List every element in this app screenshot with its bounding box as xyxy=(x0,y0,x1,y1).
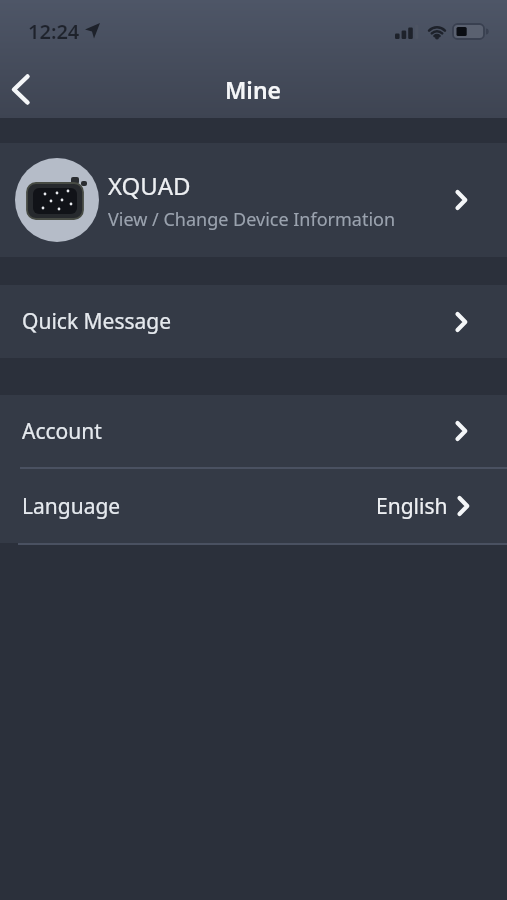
button[interactable]: XQUAD xyxy=(0,143,507,257)
button[interactable]: Quick Message xyxy=(0,285,507,358)
button[interactable]: Account xyxy=(0,395,507,467)
staticText: Account xyxy=(22,417,102,446)
button[interactable]: Language xyxy=(0,469,507,543)
staticText: XQUAD xyxy=(108,169,191,202)
staticText: Quick Message xyxy=(22,307,172,336)
staticText: Mine xyxy=(225,74,282,105)
staticText: View / Change Device Information xyxy=(108,207,396,232)
staticText: Language xyxy=(22,492,121,521)
staticText: English xyxy=(376,492,448,521)
staticText: 12:24 xyxy=(28,18,80,45)
